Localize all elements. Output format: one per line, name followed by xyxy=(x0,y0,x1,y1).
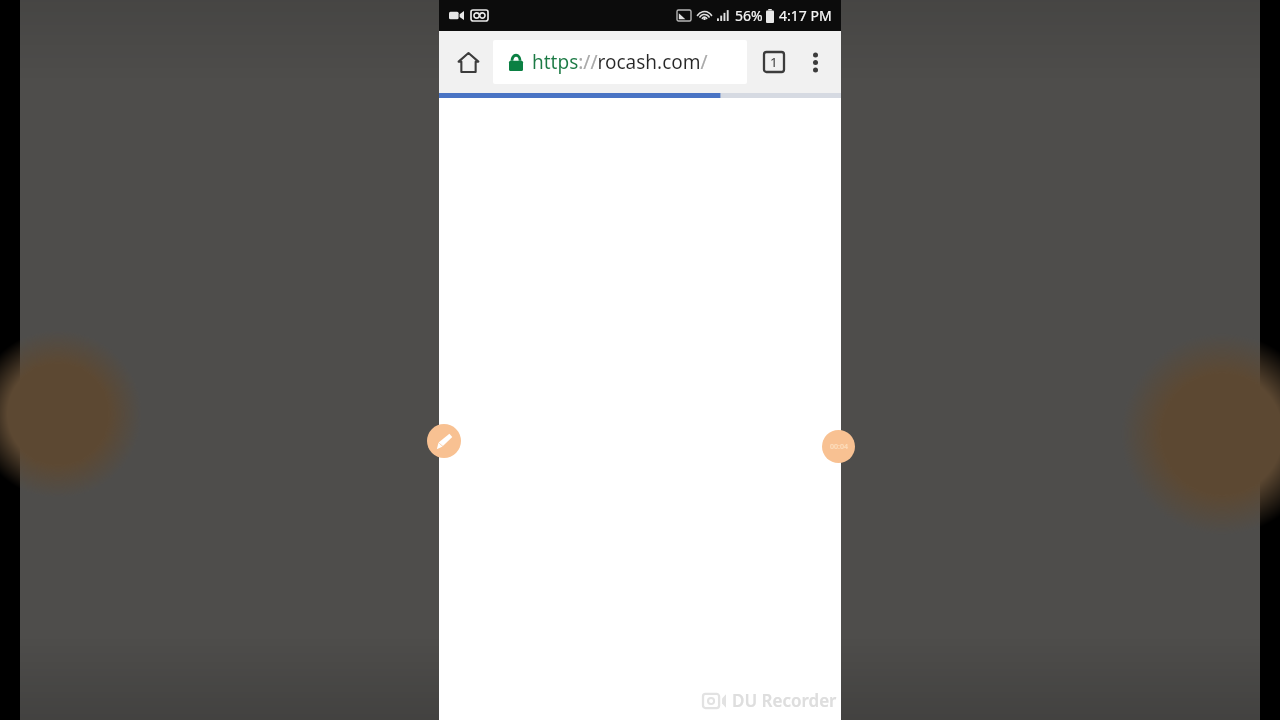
staticText: DU Recorder xyxy=(732,689,837,712)
button[interactable]: Tabs xyxy=(753,41,795,83)
staticText: https://rocash.com/earn xyxy=(532,49,747,75)
staticText: 1 xyxy=(770,53,778,71)
staticText: 4:17 PM xyxy=(779,6,832,25)
button[interactable]: Draw xyxy=(427,424,461,458)
button[interactable]: More options xyxy=(795,42,835,82)
staticText: 56% xyxy=(735,6,763,25)
staticText: 00:04 xyxy=(830,442,848,452)
button[interactable]: https://rocash.com/earn xyxy=(493,40,747,84)
button[interactable]: Recording timer xyxy=(822,430,855,463)
button[interactable]: Home xyxy=(445,39,491,85)
